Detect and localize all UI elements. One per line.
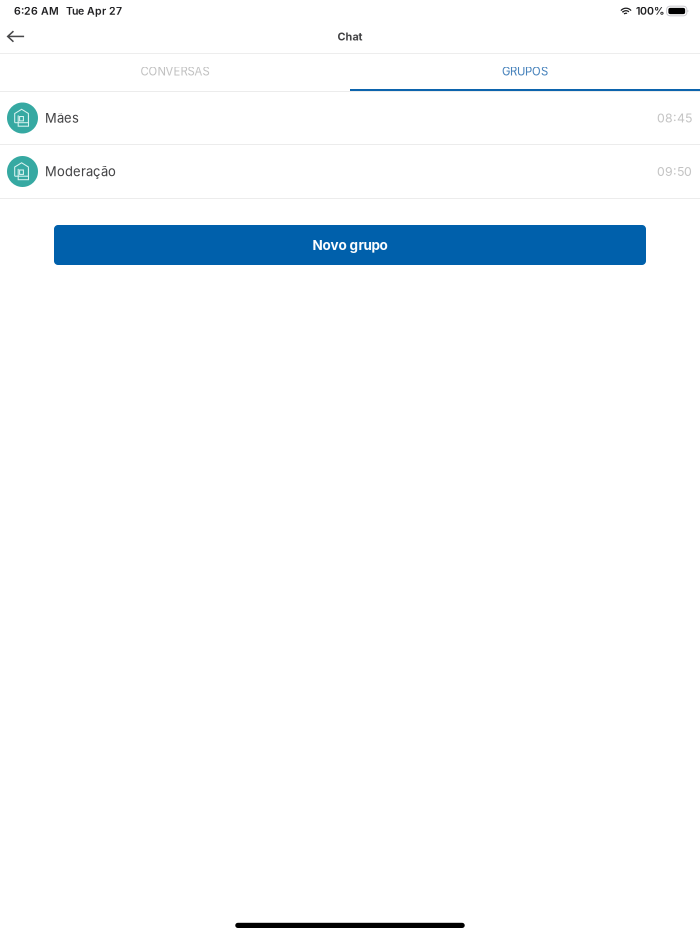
- button[interactable]: Moderação: [0, 145, 700, 199]
- staticText: Moderação: [45, 164, 116, 179]
- button[interactable]: GRUPOS: [350, 54, 700, 91]
- button[interactable]: Novo grupo: [54, 225, 646, 265]
- staticText: GRUPOS: [502, 65, 548, 78]
- staticText: 08:45: [657, 111, 692, 125]
- staticText: 6:26 AM: [14, 5, 59, 17]
- staticText: Novo grupo: [312, 237, 387, 253]
- staticText: CONVERSAS: [140, 65, 209, 78]
- staticText: 09:50: [657, 164, 692, 179]
- button[interactable]: Mães: [0, 92, 700, 145]
- staticText: Mães: [45, 110, 79, 126]
- button[interactable]: CONVERSAS: [0, 54, 350, 91]
- staticText: 100%: [636, 5, 665, 17]
- staticText: Chat: [337, 30, 362, 43]
- button[interactable]: Back: [0, 22, 31, 51]
- staticText: Tue Apr 27: [66, 5, 122, 17]
